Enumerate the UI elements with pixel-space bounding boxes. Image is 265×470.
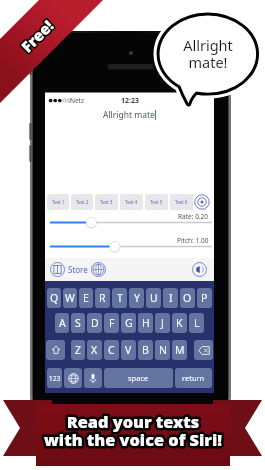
staticText: K — [176, 316, 183, 330]
button[interactable]: M — [172, 340, 187, 360]
button[interactable]: F — [104, 313, 119, 333]
button[interactable]: Z — [71, 340, 85, 360]
button[interactable]: return — [175, 368, 212, 388]
button[interactable]: Text 4 — [120, 194, 143, 210]
staticText: V — [125, 343, 132, 357]
staticText: Store — [68, 264, 88, 275]
staticText: Text 3 — [100, 199, 113, 205]
button[interactable]: W — [63, 288, 77, 308]
button[interactable]: O — [180, 288, 195, 308]
staticText: S — [75, 316, 81, 330]
staticText: Read your texts with the voice of Siri! — [44, 411, 222, 451]
button[interactable]: Shift — [46, 340, 65, 360]
staticText: O — [183, 291, 192, 305]
button[interactable]: U — [146, 288, 161, 308]
staticText: H — [142, 316, 150, 330]
staticText: Text 5 — [150, 199, 163, 205]
staticText: Free! — [16, 15, 57, 56]
button[interactable]: S — [71, 313, 85, 333]
button[interactable]: space — [104, 368, 173, 388]
staticText: Rate: 0.20 — [178, 212, 209, 221]
staticText: J — [161, 316, 164, 330]
staticText: E — [83, 291, 89, 305]
staticText: I — [169, 291, 173, 305]
staticText: Text 1 — [52, 199, 65, 205]
staticText: L — [194, 316, 200, 330]
button[interactable]: Text 5 — [145, 194, 168, 210]
button[interactable]: I — [163, 288, 178, 308]
staticText: Netz — [70, 96, 85, 105]
staticText: Allright mate — [103, 109, 155, 121]
button[interactable]: Speak — [192, 262, 207, 277]
staticText: P — [201, 291, 208, 305]
button[interactable]: Switch keyboard — [64, 368, 82, 388]
staticText: Z — [75, 343, 82, 357]
button[interactable]: Text 6 — [170, 194, 193, 210]
staticText: Read your texts with the voice of Siri! — [44, 411, 222, 451]
button[interactable]: 123 — [47, 368, 62, 388]
staticText: Free! — [16, 15, 57, 56]
staticText: Allright mate! — [183, 35, 233, 72]
button[interactable] — [45, 212, 214, 234]
staticText: X — [91, 343, 98, 357]
button[interactable]: Q — [47, 288, 61, 308]
staticText: 12:23 — [121, 96, 139, 106]
button[interactable]: A — [55, 313, 69, 333]
staticText: space — [128, 373, 149, 383]
button[interactable]: T — [112, 288, 127, 308]
staticText: G — [125, 316, 133, 330]
staticText: M — [175, 343, 185, 357]
button[interactable]: Settings — [194, 194, 210, 210]
staticText: 123 — [49, 374, 61, 383]
button[interactable]: Web — [91, 262, 106, 277]
staticText: Pitch: 1.00 — [177, 236, 209, 245]
staticText: Q — [50, 291, 59, 305]
staticText: return — [182, 373, 205, 383]
staticText: B — [142, 343, 149, 357]
button[interactable]: Text 2 — [71, 194, 93, 210]
button[interactable]: Library — [50, 262, 65, 277]
button[interactable]: P — [197, 288, 212, 308]
staticText: C — [108, 343, 115, 357]
staticText: F — [109, 316, 115, 330]
staticText: T — [117, 291, 123, 305]
staticText: Y — [134, 291, 140, 305]
button[interactable]: Backspace — [194, 340, 213, 360]
button[interactable]: E — [79, 288, 93, 308]
button[interactable] — [45, 236, 214, 258]
button[interactable]: Text 3 — [95, 194, 118, 210]
button[interactable]: V — [121, 340, 136, 360]
button[interactable]: Text 1 — [47, 194, 69, 210]
button[interactable]: B — [138, 340, 153, 360]
staticText: D — [91, 316, 99, 330]
button[interactable]: H — [138, 313, 153, 333]
button[interactable]: N — [155, 340, 170, 360]
staticText: W — [65, 291, 75, 305]
button[interactable]: X — [87, 340, 102, 360]
staticText: Text 2 — [76, 199, 89, 205]
button[interactable]: D — [87, 313, 102, 333]
button[interactable]: J — [155, 313, 170, 333]
button[interactable]: Y — [129, 288, 144, 308]
staticText: N — [159, 343, 167, 357]
staticText: Text 4 — [125, 199, 138, 205]
button[interactable]: K — [172, 313, 187, 333]
staticText: A — [59, 316, 66, 330]
staticText: Text 6 — [175, 199, 188, 205]
button[interactable]: Dictate — [84, 368, 102, 388]
button[interactable]: C — [104, 340, 119, 360]
staticText: R — [99, 291, 106, 305]
staticText: U — [150, 291, 158, 305]
button[interactable]: R — [95, 288, 110, 308]
button[interactable]: G — [121, 313, 136, 333]
button[interactable]: L — [189, 313, 204, 333]
